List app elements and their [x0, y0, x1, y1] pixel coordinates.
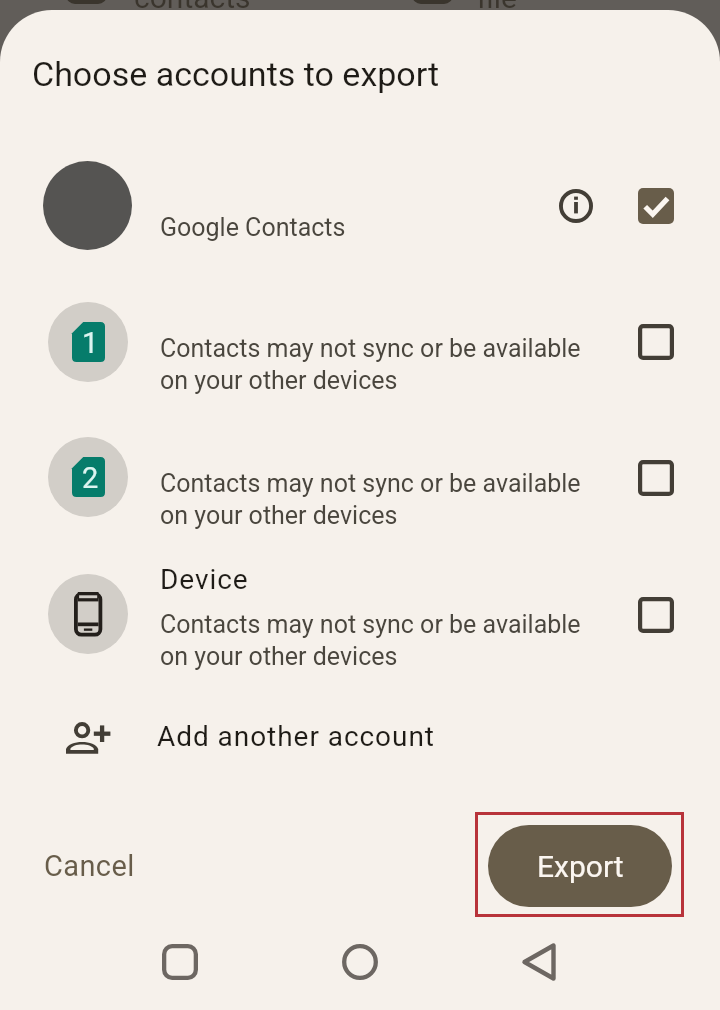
button[interactable]: 2: [0, 432, 720, 532]
staticText: Device: [160, 563, 249, 596]
button[interactable]: Cancel: [26, 836, 153, 896]
staticText: Choose accounts to export: [32, 54, 440, 94]
staticText: Contacts may not sync or be available on…: [160, 332, 581, 396]
staticText: Cancel: [44, 849, 135, 883]
button[interactable]: Add another account: [0, 706, 720, 776]
staticText: 2: [82, 461, 99, 495]
button[interactable]: Info: [552, 182, 600, 230]
staticText: Export: [537, 849, 624, 884]
button[interactable]: SIM 2, not selected: [638, 460, 674, 496]
button[interactable]: Recent apps: [150, 932, 210, 992]
button[interactable]: Home: [330, 932, 390, 992]
button[interactable]: SIM 1, not selected: [638, 324, 674, 360]
button[interactable]: Device, not selected: [638, 597, 674, 633]
button[interactable]: Device: [0, 565, 720, 675]
button[interactable]: Google Contacts, selected: [638, 188, 674, 224]
staticText: Contacts may not sync or be available on…: [160, 608, 581, 672]
staticText: 1: [82, 326, 99, 360]
staticText: Add another account: [157, 720, 435, 753]
staticText: Contacts may not sync or be available on…: [160, 467, 581, 531]
staticText: file: [477, 0, 517, 15]
staticText: Google Contacts: [160, 213, 346, 242]
button[interactable]: Export: [488, 825, 672, 907]
button[interactable]: Back: [509, 932, 569, 992]
staticText: contacts: [134, 0, 251, 15]
button[interactable]: 1: [0, 297, 720, 397]
button[interactable]: Google Contacts: [0, 150, 720, 262]
